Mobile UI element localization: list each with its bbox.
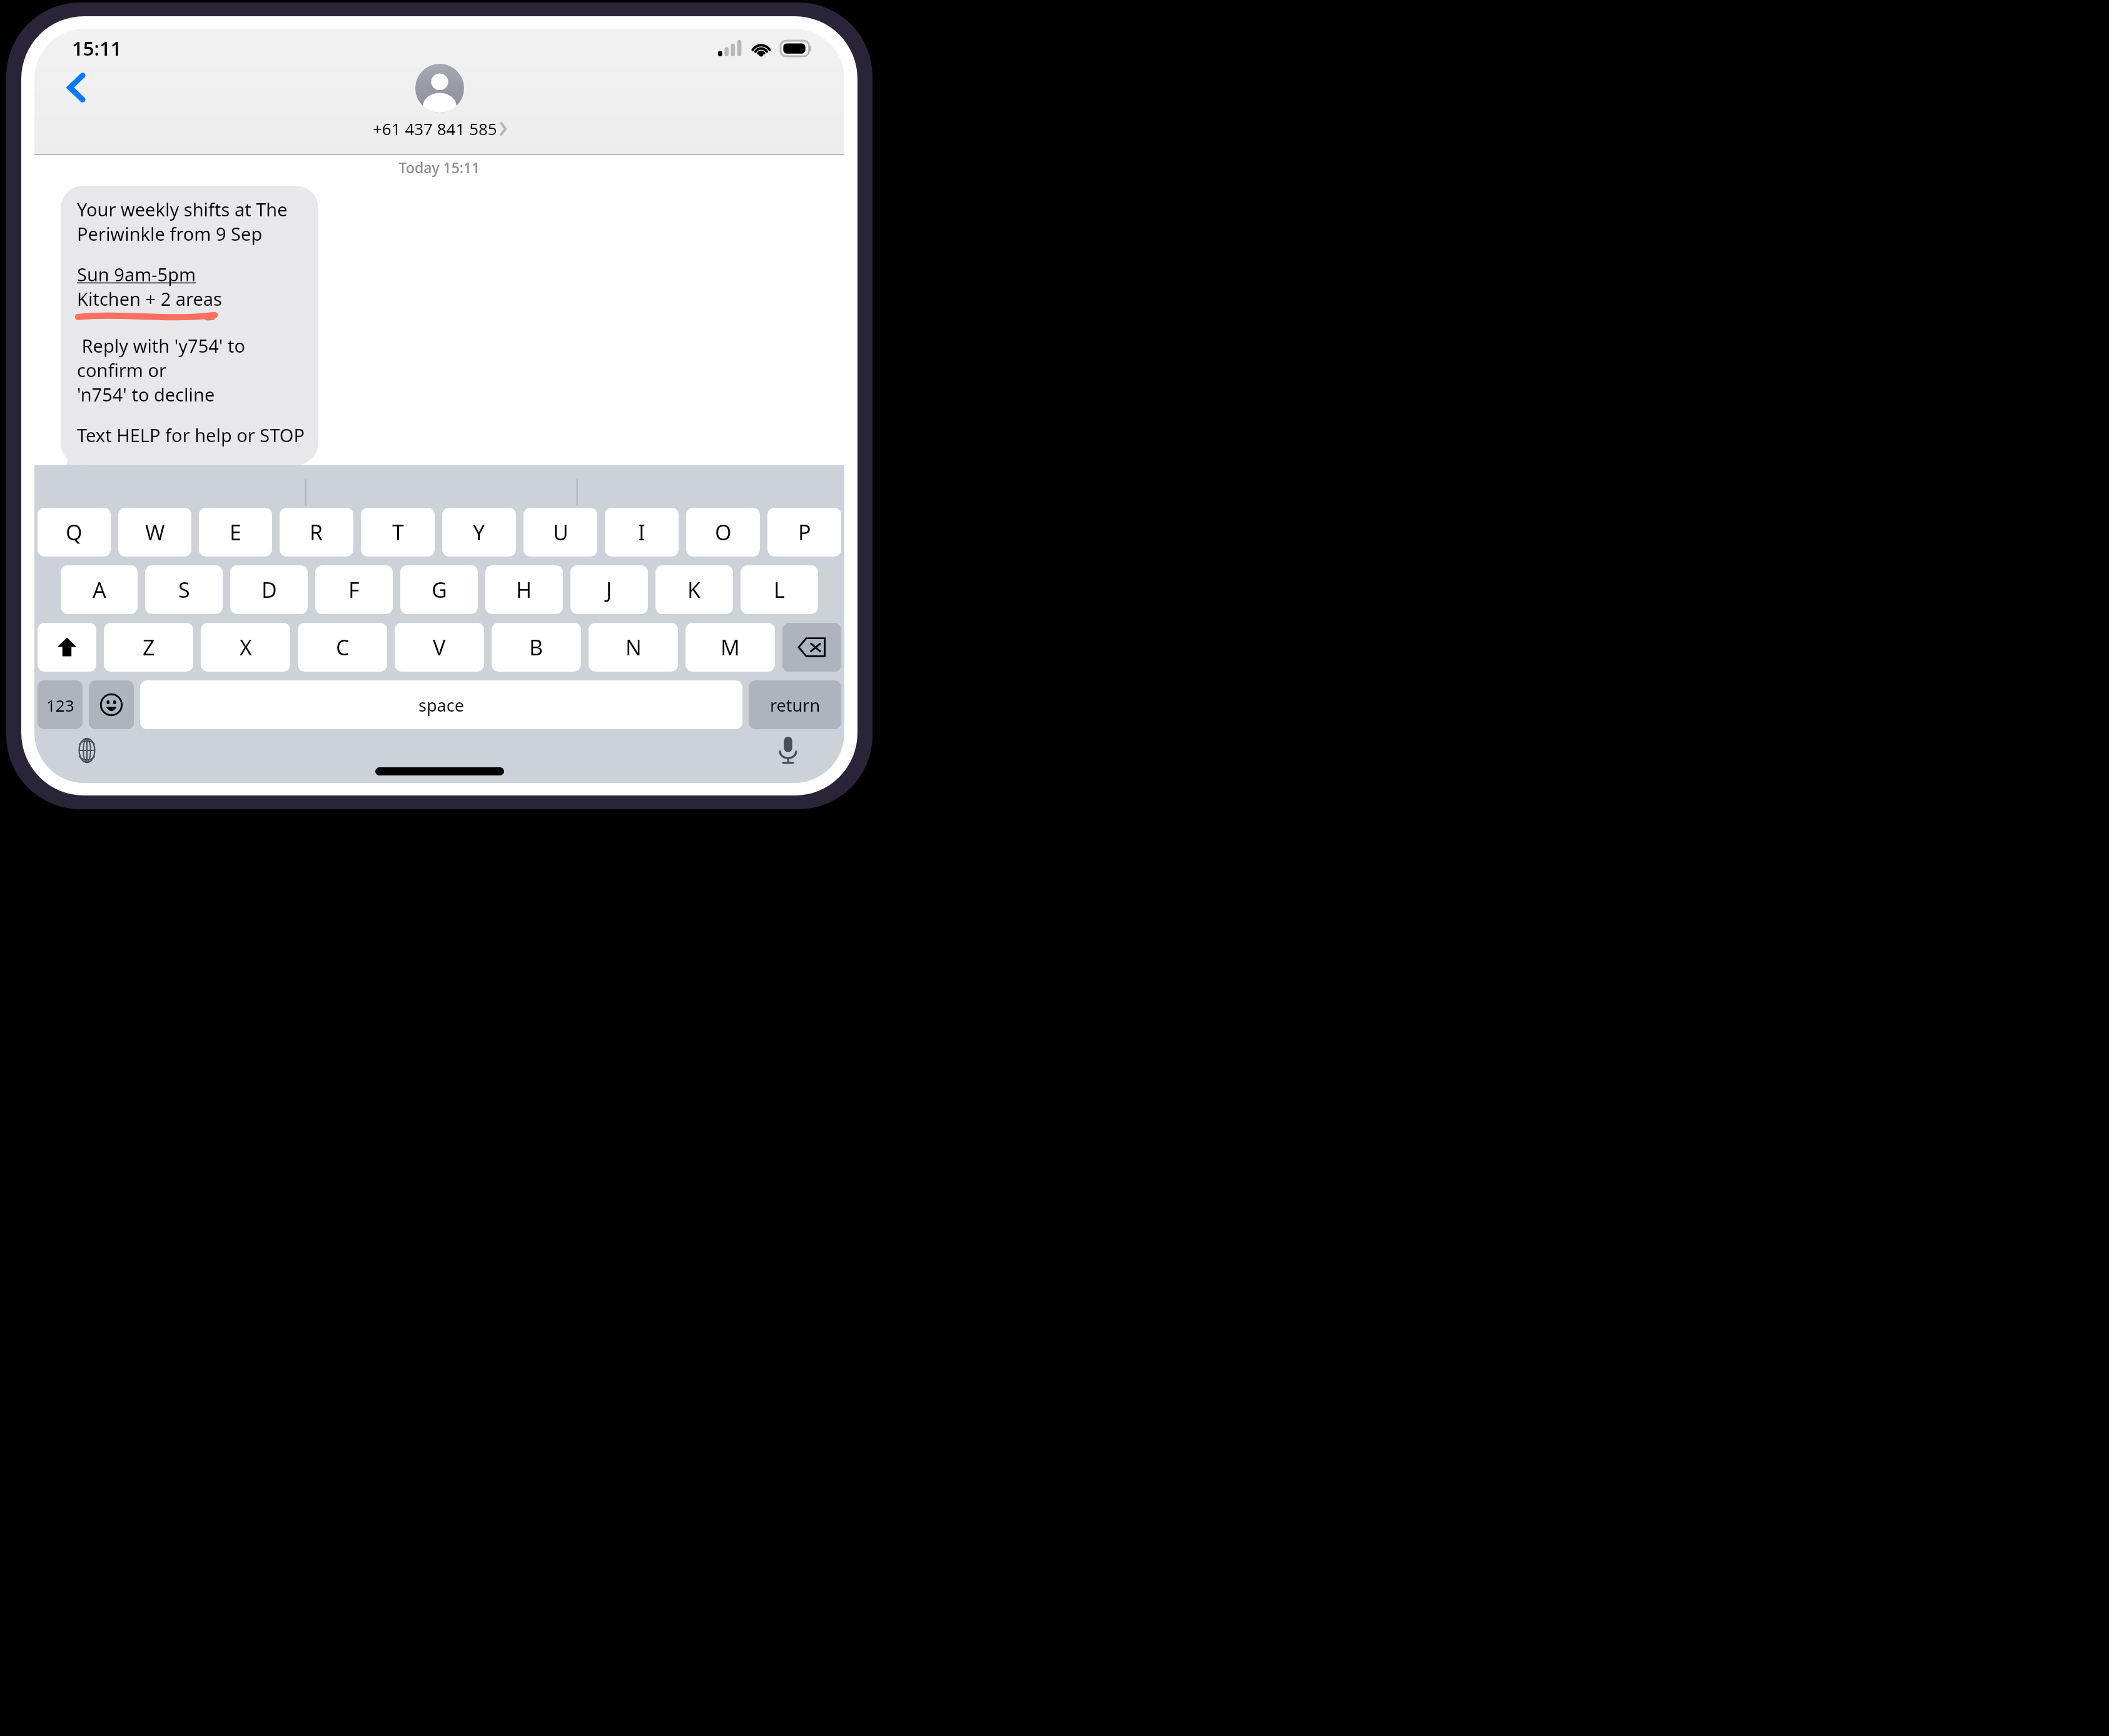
- staticText: Kitchen + 2 areas: [77, 286, 223, 311]
- staticText: J: [606, 575, 612, 604]
- button[interactable]: C: [298, 623, 387, 672]
- staticText: 'n754' to decline: [77, 382, 215, 406]
- button[interactable]: Z: [104, 623, 193, 672]
- staticText: 123: [46, 694, 74, 716]
- button[interactable]: F: [315, 565, 393, 614]
- button[interactable]: K: [655, 565, 733, 614]
- staticText: Periwinkle from 9 Sep: [77, 221, 263, 246]
- button[interactable]: X: [201, 623, 290, 672]
- staticText: Z: [143, 633, 155, 662]
- staticText: H: [516, 575, 532, 604]
- staticText: Q: [66, 518, 83, 547]
- staticText: +61 437 841 585: [373, 118, 497, 139]
- button[interactable]: Change keyboard: [69, 733, 104, 768]
- staticText: X: [240, 633, 252, 662]
- button[interactable]: Y: [442, 508, 516, 557]
- button[interactable]: G: [400, 565, 478, 614]
- button[interactable]: I: [605, 508, 679, 557]
- staticText: I: [638, 518, 645, 547]
- staticText: space: [418, 694, 464, 717]
- staticText: T: [392, 518, 404, 547]
- button[interactable]: A: [61, 565, 138, 614]
- button[interactable]: B: [492, 623, 581, 672]
- staticText: return: [770, 694, 821, 717]
- button[interactable]: T: [361, 508, 435, 557]
- button[interactable]: return: [749, 680, 841, 729]
- staticText: S: [178, 575, 190, 604]
- button[interactable]: M: [685, 623, 775, 672]
- button[interactable]: O: [686, 508, 760, 557]
- button[interactable]: Back: [57, 68, 97, 108]
- staticText: D: [261, 575, 277, 604]
- staticText: Sun 9am-5pm: [77, 262, 196, 286]
- button[interactable]: N: [589, 623, 678, 672]
- button[interactable]: Dictate: [771, 733, 806, 768]
- staticText: L: [774, 575, 785, 604]
- button[interactable]: U: [523, 508, 597, 557]
- button[interactable]: L: [741, 565, 818, 614]
- staticText: O: [715, 518, 732, 547]
- staticText: Reply with 'y754' to confirm or: [77, 333, 305, 382]
- staticText: G: [432, 575, 447, 604]
- staticText: 15:11: [72, 35, 122, 61]
- button[interactable]: space: [140, 680, 742, 729]
- staticText: K: [687, 575, 701, 604]
- staticText: Text HELP for help or STOP to: [77, 423, 305, 453]
- button[interactable]: V: [395, 623, 484, 672]
- button[interactable]: Your weekly shifts at The: [61, 186, 318, 465]
- button[interactable]: Q: [38, 508, 111, 557]
- button[interactable]: +61 437 841 585: [373, 118, 506, 139]
- button[interactable]: S: [145, 565, 223, 614]
- button[interactable]: P: [767, 508, 841, 557]
- staticText: A: [93, 575, 106, 604]
- button[interactable]: E: [199, 508, 272, 557]
- button[interactable]: Delete: [782, 623, 841, 672]
- staticText: U: [553, 518, 569, 547]
- staticText: E: [230, 518, 241, 547]
- button[interactable]: Emoji: [89, 680, 134, 729]
- staticText: R: [310, 518, 323, 547]
- staticText: Y: [473, 518, 485, 547]
- staticText: B: [529, 633, 544, 662]
- button[interactable]: D: [230, 565, 308, 614]
- button[interactable]: Shift: [38, 623, 96, 672]
- staticText: Today 15:11: [34, 158, 844, 177]
- staticText: C: [336, 633, 350, 662]
- staticText: Your weekly shifts at The: [77, 197, 288, 221]
- button[interactable]: 123: [38, 680, 83, 729]
- staticText: F: [348, 575, 360, 604]
- staticText: P: [798, 518, 811, 547]
- staticText: N: [625, 633, 642, 662]
- button[interactable]: J: [570, 565, 648, 614]
- button[interactable]: R: [280, 508, 353, 557]
- staticText: V: [433, 633, 446, 662]
- staticText: M: [721, 633, 740, 662]
- button[interactable]: W: [118, 508, 191, 557]
- staticText: W: [145, 518, 165, 547]
- button[interactable]: H: [485, 565, 563, 614]
